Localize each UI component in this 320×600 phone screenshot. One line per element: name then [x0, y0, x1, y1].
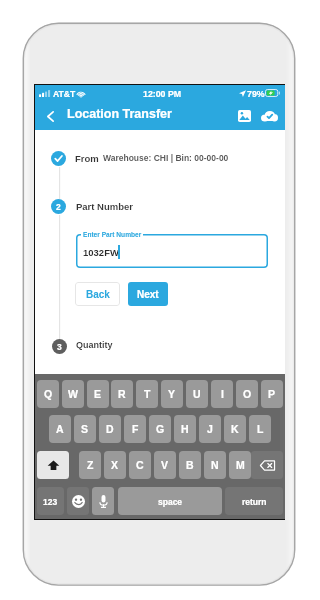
staticText: R [118, 388, 126, 400]
button[interactable]: Dictate [92, 487, 114, 515]
button[interactable]: D [99, 415, 121, 443]
button[interactable]: X [104, 451, 126, 479]
button[interactable]: P [261, 380, 283, 408]
staticText: Z [87, 459, 94, 471]
button[interactable]: I [211, 380, 233, 408]
button[interactable]: Q [37, 380, 59, 408]
staticText: N [211, 459, 219, 471]
button[interactable]: Sync [258, 104, 280, 128]
button[interactable]: E [87, 380, 109, 408]
button[interactable]: G [149, 415, 171, 443]
staticText: E [94, 388, 102, 400]
staticText: Warehouse: CHI | Bin: 00-00-00 [103, 153, 229, 162]
staticText: I [221, 388, 224, 400]
button[interactable]: J [199, 415, 221, 443]
staticText: C [136, 459, 144, 471]
button[interactable]: N [204, 451, 226, 479]
button[interactable]: Backspace [251, 451, 283, 479]
button[interactable]: M [229, 451, 251, 479]
button[interactable]: F [124, 415, 146, 443]
button[interactable]: Y [161, 380, 183, 408]
staticText: V [161, 459, 169, 471]
button[interactable]: C [129, 451, 151, 479]
button[interactable]: V [154, 451, 176, 479]
staticText: Y [168, 388, 176, 400]
button[interactable]: Z [79, 451, 101, 479]
staticText: AT&T [53, 89, 76, 99]
staticText: W [68, 388, 78, 400]
button[interactable]: space [118, 487, 222, 515]
staticText: Enter Part Number [83, 231, 142, 238]
button[interactable]: Photo [234, 104, 254, 128]
staticText: A [56, 423, 64, 435]
staticText: 2 [56, 202, 61, 211]
staticText: 123 [43, 497, 58, 506]
staticText: X [111, 459, 119, 471]
staticText: T [144, 388, 151, 400]
staticText: Q [44, 388, 53, 400]
staticText: 12:00 PM [143, 89, 182, 99]
staticText: B [186, 459, 194, 471]
button[interactable]: A [49, 415, 71, 443]
button[interactable]: K [224, 415, 246, 443]
staticText: U [193, 388, 201, 400]
staticText: L [257, 423, 264, 435]
staticText: space [158, 497, 183, 506]
staticText: return [242, 497, 267, 506]
staticText: 1032FW [83, 247, 119, 258]
staticText: M [236, 459, 245, 471]
staticText: D [106, 423, 114, 435]
staticText: Location Transfer [67, 107, 172, 121]
staticText: G [156, 423, 165, 435]
staticText: 79% [247, 89, 265, 99]
button[interactable]: Shift [37, 451, 69, 479]
button[interactable]: Emoji [67, 487, 89, 515]
staticText: K [231, 423, 239, 435]
button[interactable]: U [186, 380, 208, 408]
staticText: O [243, 388, 252, 400]
button[interactable]: R [111, 380, 133, 408]
staticText: P [268, 388, 276, 400]
staticText: Part Number [76, 201, 134, 212]
button[interactable]: B [179, 451, 201, 479]
button[interactable]: H [174, 415, 196, 443]
button[interactable]: L [249, 415, 271, 443]
button[interactable]: Back [40, 105, 60, 128]
staticText: S [81, 423, 89, 435]
staticText: Back [86, 289, 110, 300]
staticText: F [132, 423, 139, 435]
button[interactable]: Next [128, 282, 168, 306]
staticText: J [207, 423, 213, 435]
staticText: 3 [57, 342, 62, 351]
button[interactable]: return [225, 487, 283, 515]
button[interactable]: S [74, 415, 96, 443]
staticText: From [75, 153, 99, 164]
button[interactable]: Back [75, 282, 120, 306]
staticText: Quantity [76, 340, 113, 350]
button[interactable]: T [136, 380, 158, 408]
staticText: Next [137, 289, 159, 300]
staticText: H [181, 423, 189, 435]
button[interactable]: O [236, 380, 258, 408]
button[interactable]: 123 [37, 487, 64, 515]
button[interactable]: W [62, 380, 84, 408]
